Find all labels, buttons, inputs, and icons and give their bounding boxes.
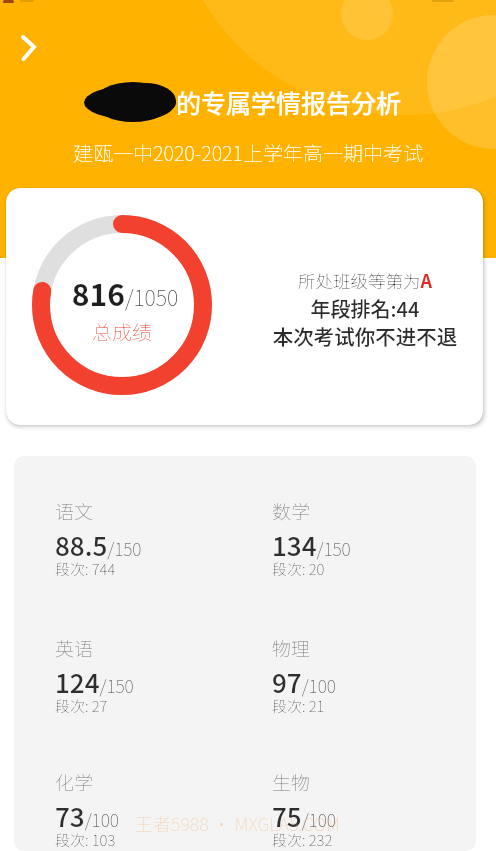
button[interactable] bbox=[8, 28, 48, 68]
staticText: 段次: 103 bbox=[55, 829, 116, 851]
button[interactable]: 化学 bbox=[55, 768, 235, 851]
staticText: 物理 bbox=[272, 634, 311, 662]
button[interactable]: 英语 bbox=[55, 634, 235, 724]
staticText: 134/150 bbox=[272, 526, 351, 564]
staticText: 英语 bbox=[55, 634, 94, 662]
button[interactable]: 语文 bbox=[55, 497, 235, 587]
staticText: 所处班级等第为A bbox=[250, 267, 480, 293]
button[interactable]: 数学 bbox=[272, 497, 452, 587]
staticText: 97/100 bbox=[272, 663, 336, 701]
staticText: 数学 bbox=[272, 497, 311, 525]
staticText: 本次考试你不进不退 bbox=[250, 321, 480, 351]
staticText: 语文 bbox=[55, 497, 94, 525]
staticText: 段次: 744 bbox=[55, 558, 116, 580]
staticText: 段次: 20 bbox=[272, 558, 325, 580]
staticText: 段次: 232 bbox=[272, 829, 333, 851]
staticText: 75/100 bbox=[272, 797, 336, 835]
staticText: 王者5988 · MXGLA5.COM bbox=[135, 810, 340, 836]
staticText: 124/150 bbox=[55, 663, 134, 701]
staticText: 建瓯一中2020-2021上学年高一期中考试 bbox=[0, 138, 496, 167]
staticText: 段次: 27 bbox=[55, 695, 108, 717]
staticText: 总成绩 bbox=[32, 317, 212, 346]
button[interactable]: 物理 bbox=[272, 634, 452, 724]
staticText: 段次: 21 bbox=[272, 695, 325, 717]
staticText: 年段排名:44 bbox=[250, 294, 480, 323]
staticText: 化学 bbox=[55, 768, 94, 796]
button[interactable]: 生物 bbox=[272, 768, 452, 851]
staticText: 816/1050 bbox=[35, 271, 215, 314]
staticText: 73/100 bbox=[55, 797, 119, 835]
staticText: 生物 bbox=[272, 768, 311, 796]
staticText: 88.5/150 bbox=[55, 526, 142, 564]
staticText: 的专属学情报告分析 bbox=[176, 84, 402, 120]
